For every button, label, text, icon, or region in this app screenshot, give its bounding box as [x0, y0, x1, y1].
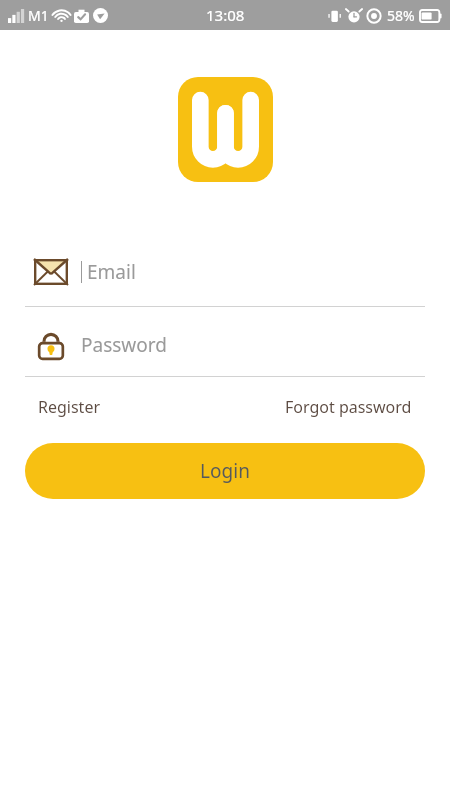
button[interactable]: Password: [33, 327, 417, 363]
other: Email: [34, 259, 68, 285]
staticText: Email: [87, 259, 136, 285]
staticText: 58%: [387, 6, 415, 25]
button[interactable]: Login: [25, 443, 425, 499]
other: Password: [38, 330, 64, 360]
staticText: 13:08: [206, 5, 245, 25]
staticText: Password: [81, 332, 167, 358]
button[interactable]: Email: [33, 254, 417, 290]
staticText: Login: [200, 458, 250, 484]
staticText: M1: [28, 6, 49, 25]
button[interactable]: Register: [38, 392, 101, 422]
button[interactable]: Forgot password: [285, 392, 412, 422]
